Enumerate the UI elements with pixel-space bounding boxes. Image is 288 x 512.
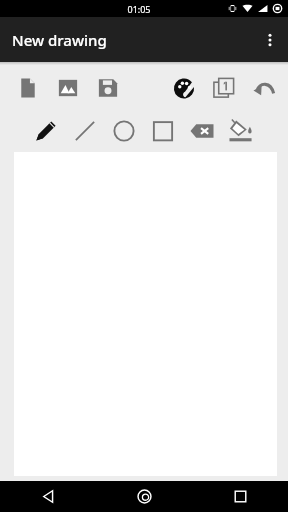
button[interactable]: Color palette <box>164 68 204 108</box>
button[interactable]: Layers <box>204 68 244 108</box>
staticText: New drawing <box>12 30 107 50</box>
button[interactable]: Circle <box>104 111 143 150</box>
button[interactable]: Undo <box>244 68 284 108</box>
button[interactable]: Line <box>65 111 104 150</box>
button[interactable]: Back <box>0 481 96 512</box>
button[interactable]: Pencil <box>26 111 65 150</box>
button[interactable]: New file <box>8 68 48 108</box>
button[interactable]: Recents <box>192 481 288 512</box>
button[interactable]: Open image <box>48 68 88 108</box>
button[interactable]: Rectangle <box>143 111 182 150</box>
button[interactable]: Home <box>96 481 192 512</box>
button[interactable]: Save <box>88 68 128 108</box>
button[interactable]: Eraser <box>182 111 221 150</box>
button[interactable]: More options <box>252 17 288 62</box>
button[interactable]: Fill <box>221 111 260 150</box>
staticText: 01:05 <box>127 3 151 15</box>
